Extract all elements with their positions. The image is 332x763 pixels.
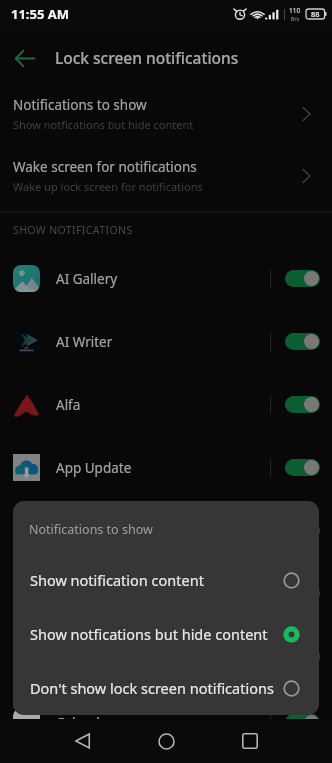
staticText: Browser	[56, 585, 270, 603]
staticText: Calendar	[56, 714, 270, 732]
staticText: Lock screen notifications	[55, 47, 239, 68]
button[interactable]: AI Writer	[0, 310, 332, 373]
staticText: Notifications to show	[13, 96, 147, 114]
button[interactable]: Booking.com	[0, 499, 332, 562]
button[interactable]: Home	[144, 719, 188, 763]
button[interactable]: Toggle	[285, 648, 320, 665]
button[interactable]: Toggle	[285, 459, 320, 476]
staticText: B/s	[291, 15, 300, 22]
staticText: Show notfications but hide content	[30, 624, 283, 644]
staticText: Booking.com	[56, 522, 270, 540]
button[interactable]: App Update	[0, 436, 332, 499]
staticText: AI Gallery	[56, 270, 270, 288]
button[interactable]: Calendar	[0, 691, 332, 754]
staticText: Alfa	[56, 396, 270, 414]
button[interactable]: Browser	[0, 562, 332, 625]
button[interactable]: Toggle	[285, 270, 320, 287]
staticText: Wake up lock screen for notifications	[13, 179, 203, 194]
button[interactable]: Toggle	[285, 714, 320, 731]
button[interactable]: Recent apps	[228, 719, 272, 763]
button[interactable]: Notifications to show	[0, 83, 332, 145]
button[interactable]: Back	[5, 38, 45, 78]
staticText: Show notfications but hide content	[13, 117, 194, 132]
staticText: 110	[289, 6, 301, 15]
staticText: App Update	[56, 459, 270, 477]
staticText: 11:55 AM	[11, 5, 70, 23]
button[interactable]: Back	[60, 719, 104, 763]
staticText: Show notification content	[30, 570, 283, 590]
staticText: Notifications to show	[29, 521, 153, 538]
staticText: AI Writer	[56, 333, 270, 351]
button[interactable]: Show notification content	[13, 553, 319, 607]
button[interactable]: Toggle	[285, 333, 320, 350]
button[interactable]: Alfa	[0, 373, 332, 436]
button[interactable]: Toggle	[285, 585, 320, 602]
staticText: SHOW NOTIFICATIONS	[13, 223, 332, 237]
staticText: Don't show lock screen notifications	[30, 678, 283, 698]
staticText: Wake screen for notifications	[13, 158, 197, 176]
button[interactable]: Don't show lock screen notifications	[13, 661, 319, 715]
button[interactable]: Toggle	[285, 396, 320, 413]
button[interactable]: AI Gallery	[0, 247, 332, 310]
button[interactable]: Toggle	[285, 522, 320, 539]
staticText: 88	[311, 9, 320, 19]
button[interactable]: Show notfications but hide content	[13, 607, 319, 661]
button[interactable]: Wake screen for notifications	[0, 145, 332, 207]
button[interactable]: Calculator	[0, 625, 332, 688]
